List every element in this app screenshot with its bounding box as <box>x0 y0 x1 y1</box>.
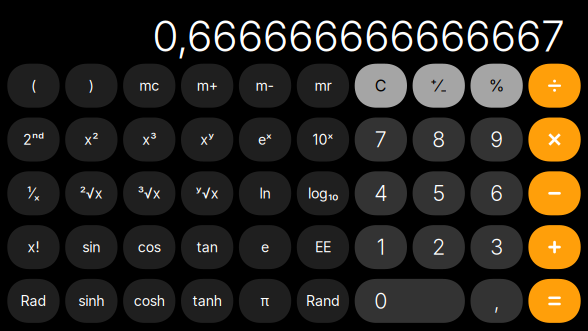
button[interactable]: x³ <box>123 117 175 161</box>
button[interactable]: xʸ <box>181 117 233 161</box>
staticText: 1 <box>377 234 385 260</box>
staticText: % <box>489 76 505 95</box>
button[interactable]: x! <box>7 225 60 269</box>
button[interactable]: m+ <box>181 64 233 108</box>
staticText: x³ <box>142 131 156 148</box>
button[interactable]: 0 <box>355 279 465 323</box>
staticText: 2 <box>432 234 445 260</box>
button[interactable]: sinh <box>65 279 117 323</box>
button[interactable]: x² <box>65 117 117 161</box>
staticText: 7 <box>375 127 387 152</box>
button[interactable]: mc <box>123 64 175 108</box>
staticText: e <box>261 238 269 256</box>
button[interactable]: Add <box>528 225 581 269</box>
button[interactable]: ln <box>239 171 291 215</box>
button[interactable]: , <box>470 279 523 323</box>
staticText: tanh <box>193 292 222 309</box>
staticText: 0 <box>374 288 387 314</box>
staticText: Rand <box>306 292 340 309</box>
button[interactable]: ¹⁄ₓ <box>7 171 60 215</box>
staticText: ¹⁄ₓ <box>27 185 40 202</box>
button[interactable]: ⁺⁄₋ <box>413 64 465 108</box>
staticText: ʸ√x <box>196 185 219 202</box>
button[interactable]: ²√x <box>65 171 117 215</box>
button[interactable]: mr <box>297 64 349 108</box>
button[interactable]: tan <box>181 225 233 269</box>
staticText: eˣ <box>258 131 272 148</box>
staticText: cosh <box>134 292 165 309</box>
button[interactable]: eˣ <box>239 117 291 161</box>
button[interactable]: ³√x <box>123 171 175 215</box>
staticText: π <box>261 292 270 309</box>
button[interactable]: 9 <box>470 117 523 161</box>
button[interactable]: tanh <box>181 279 233 323</box>
staticText: ²√x <box>80 185 103 202</box>
button[interactable]: 4 <box>355 171 407 215</box>
staticText: 3 <box>490 234 503 260</box>
staticText: 10ˣ <box>312 131 333 148</box>
staticText: m- <box>256 77 275 94</box>
staticText: 5 <box>433 180 445 206</box>
staticText: mc <box>139 77 159 94</box>
staticText: sinh <box>78 292 104 309</box>
button[interactable]: cos <box>123 225 175 269</box>
button[interactable]: C <box>355 64 407 108</box>
button[interactable]: π <box>239 279 291 323</box>
button[interactable]: 2 <box>413 225 465 269</box>
staticText: ln <box>260 185 271 202</box>
button[interactable]: Multiply <box>528 117 581 161</box>
staticText: log₁₀ <box>308 185 338 202</box>
staticText: 8 <box>432 127 445 152</box>
button[interactable]: m- <box>239 64 291 108</box>
staticText: x² <box>84 131 98 148</box>
button[interactable]: log₁₀ <box>297 171 349 215</box>
button[interactable]: Divide <box>528 64 581 108</box>
button[interactable]: Equals <box>528 279 581 323</box>
staticText: Rad <box>20 292 46 309</box>
button[interactable]: % <box>470 64 523 108</box>
staticText: sin <box>82 238 100 256</box>
button[interactable]: 3 <box>470 225 523 269</box>
staticText: 6 <box>490 180 503 206</box>
staticText: ⁺⁄₋ <box>430 76 447 95</box>
button[interactable]: Rad <box>7 279 60 323</box>
button[interactable]: cosh <box>123 279 175 323</box>
staticText: 9 <box>490 127 503 152</box>
button[interactable]: ( <box>7 64 60 108</box>
staticText: EE <box>315 238 331 256</box>
staticText: 0,666666666666667 <box>152 10 565 62</box>
button[interactable]: 7 <box>355 117 407 161</box>
button[interactable]: 1 <box>355 225 407 269</box>
button[interactable]: ʸ√x <box>181 171 233 215</box>
staticText: m+ <box>197 77 218 94</box>
button[interactable]: 6 <box>470 171 523 215</box>
staticText: ) <box>89 77 94 94</box>
button[interactable]: sin <box>65 225 117 269</box>
button[interactable]: EE <box>297 225 349 269</box>
button[interactable]: 10ˣ <box>297 117 349 161</box>
staticText: ³√x <box>138 185 161 202</box>
staticText: , <box>494 288 500 314</box>
staticText: cos <box>138 238 161 256</box>
button[interactable]: 5 <box>413 171 465 215</box>
staticText: 4 <box>374 180 387 206</box>
button[interactable]: Subtract <box>528 171 581 215</box>
staticText: x! <box>27 238 39 256</box>
staticText: tan <box>197 238 218 256</box>
staticText: ( <box>31 77 36 94</box>
staticText: xʸ <box>200 131 214 148</box>
button[interactable]: 8 <box>413 117 465 161</box>
staticText: 2ⁿᵈ <box>23 131 44 148</box>
button[interactable]: 2ⁿᵈ <box>7 117 60 161</box>
staticText: mr <box>314 77 331 94</box>
button[interactable]: e <box>239 225 291 269</box>
staticText: C <box>375 76 387 95</box>
button[interactable]: ) <box>65 64 117 108</box>
button[interactable]: Rand <box>297 279 349 323</box>
